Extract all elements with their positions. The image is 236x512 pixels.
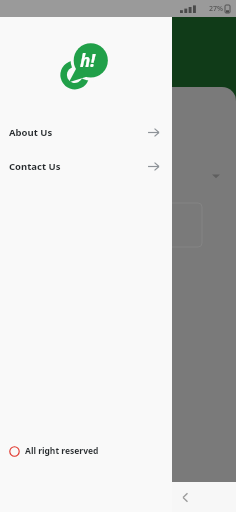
staticText: All right reserved	[25, 445, 99, 457]
staticText: 27%	[209, 4, 223, 14]
staticText: IN	[6, 168, 19, 183]
staticText: About Us	[9, 126, 53, 139]
button[interactable]: About Us	[0, 115, 172, 149]
staticText: atsApp	[4, 129, 31, 140]
staticText: Contact Us	[9, 160, 61, 173]
button[interactable]: Back	[170, 482, 200, 512]
button[interactable]: Contact Us	[0, 149, 172, 183]
staticText: h!	[80, 49, 96, 72]
